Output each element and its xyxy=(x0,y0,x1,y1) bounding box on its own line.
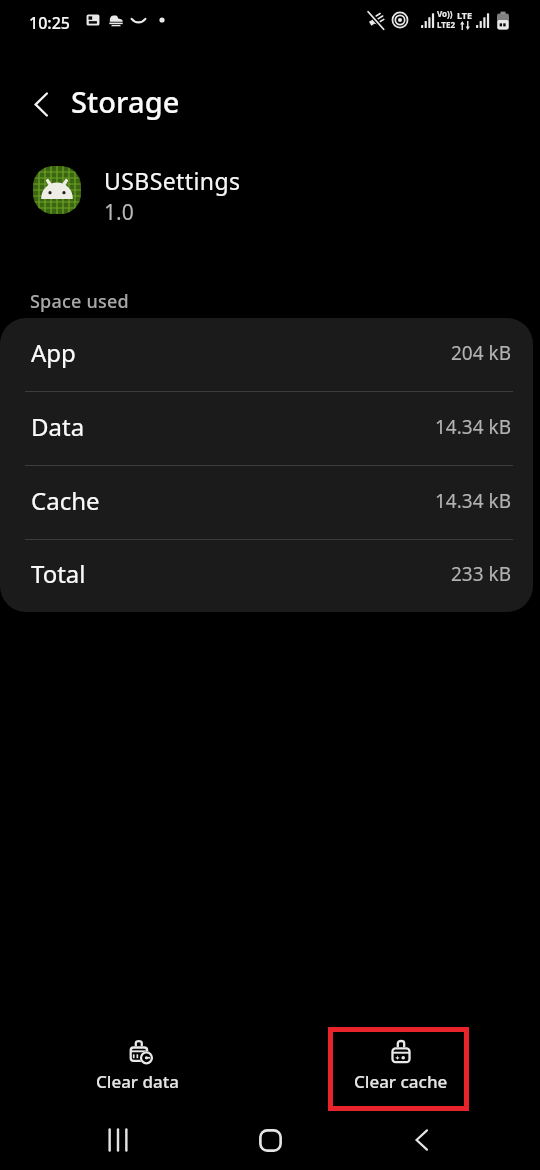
staticText: 14.34 kB xyxy=(435,414,512,440)
staticText: LTE2 xyxy=(437,19,455,30)
button[interactable]: Data xyxy=(0,392,533,466)
staticText: USBSettings xyxy=(104,165,241,196)
staticText: 14.34 kB xyxy=(435,488,512,514)
button[interactable]: Clear data xyxy=(68,1027,209,1111)
button[interactable]: Navigate up xyxy=(16,80,65,129)
button[interactable]: Total xyxy=(0,540,533,612)
staticText: Total xyxy=(31,557,86,590)
staticText: 1.0 xyxy=(104,198,134,227)
staticText: Storage xyxy=(71,82,180,121)
staticText: 233 kB xyxy=(451,561,512,587)
staticText: 10:25 xyxy=(29,12,70,34)
staticText: Space used xyxy=(30,289,129,314)
staticText: Data xyxy=(31,410,85,443)
button[interactable]: Cache xyxy=(0,466,533,540)
button[interactable]: Home xyxy=(234,1112,306,1168)
staticText: LTE xyxy=(457,9,473,21)
button[interactable]: Back xyxy=(385,1112,457,1168)
staticText: Cache xyxy=(31,484,100,517)
button[interactable]: Clear cache xyxy=(328,1027,469,1111)
staticText: 204 kB xyxy=(451,340,512,366)
button[interactable]: App xyxy=(0,318,533,392)
staticText: App xyxy=(31,336,76,369)
staticText: Clear cache xyxy=(354,1070,448,1093)
button[interactable]: Recent apps xyxy=(82,1112,154,1168)
staticText: Clear data xyxy=(96,1070,179,1093)
staticText: Vo)) xyxy=(437,8,453,19)
